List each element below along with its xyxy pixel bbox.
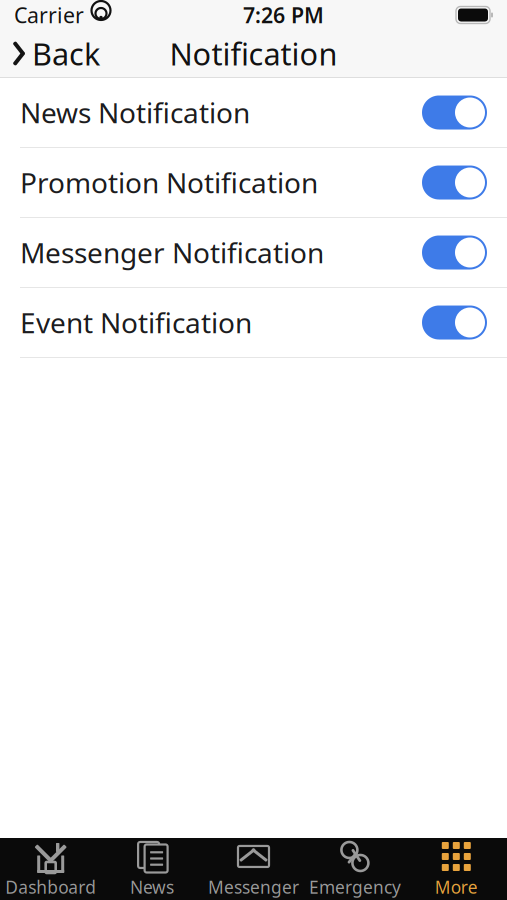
- button[interactable]: Event Notification: [0, 288, 507, 358]
- button[interactable]: Back: [0, 30, 112, 76]
- button[interactable]: News Notification: [0, 78, 507, 148]
- staticText: Notification: [169, 33, 337, 74]
- button[interactable]: Messenger Notification: [0, 218, 507, 288]
- staticText: News: [130, 875, 174, 898]
- staticText: Emergency: [309, 875, 401, 898]
- staticText: Messenger Notification: [20, 234, 324, 271]
- staticText: More: [435, 875, 478, 898]
- staticText: Dashboard: [5, 875, 96, 898]
- button[interactable]: Emergency: [304, 838, 406, 900]
- staticText: News Notification: [20, 94, 250, 131]
- staticText: Back: [32, 33, 100, 74]
- button[interactable]: More: [406, 838, 507, 900]
- staticText: Carrier: [14, 1, 84, 29]
- staticText: Event Notification: [20, 304, 252, 341]
- button[interactable]: Promotion Notification: [0, 148, 507, 218]
- staticText: Messenger: [208, 875, 299, 898]
- staticText: 7:26 PM: [243, 1, 324, 29]
- button[interactable]: News: [101, 838, 203, 900]
- staticText: Promotion Notification: [20, 164, 318, 201]
- button[interactable]: Messenger: [203, 838, 304, 900]
- button[interactable]: Dashboard: [0, 838, 101, 900]
